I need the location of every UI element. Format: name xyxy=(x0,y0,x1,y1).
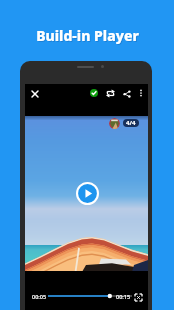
staticText: 4/4 xyxy=(126,119,136,127)
button[interactable]: Channel avatar xyxy=(109,118,120,129)
staticText: 00:05 xyxy=(32,293,47,300)
button[interactable]: Close xyxy=(27,86,43,102)
button[interactable]: Play xyxy=(76,182,99,205)
staticText: 00:15 xyxy=(116,293,131,300)
staticText: Build-in Player xyxy=(37,27,140,46)
staticText: Build-in Player xyxy=(36,26,139,45)
button[interactable]: Fullscreen xyxy=(130,289,146,305)
button[interactable]: 4 of 4 xyxy=(123,119,139,127)
button[interactable]: Share xyxy=(119,86,135,102)
button[interactable]: Seek bar xyxy=(46,290,134,302)
button[interactable]: Repeat xyxy=(102,85,118,101)
button[interactable]: More options xyxy=(133,85,149,101)
button[interactable]: Download complete xyxy=(86,85,102,101)
